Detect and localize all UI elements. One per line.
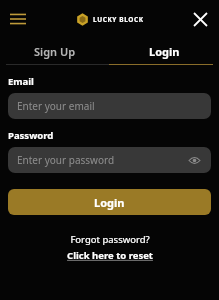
staticText: Forgot password? [70,233,150,246]
staticText: Sign Up [34,44,76,59]
staticText: Login [94,195,125,210]
button[interactable]: Enter your email [8,93,211,119]
button[interactable]: Menu [7,8,29,30]
staticText: Enter your email [17,99,95,113]
button[interactable]: Login [109,38,219,64]
staticText: Login [149,44,180,59]
button[interactable]: Login [8,189,211,215]
staticText: Click here to reset [67,249,153,262]
staticText: Password [8,129,54,142]
staticText: LUCKY BLOCK [93,15,144,24]
staticText: Enter your password [17,153,115,167]
button[interactable]: Show password [186,152,202,168]
button[interactable]: Click here to reset [67,249,153,262]
staticText: Email [8,75,34,88]
button[interactable]: Sign Up [0,38,109,64]
button[interactable]: Enter your password [8,147,211,173]
button[interactable]: Close [189,8,211,30]
